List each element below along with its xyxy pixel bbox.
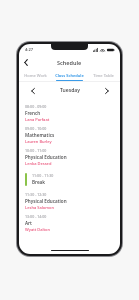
staticText: Mathematics bbox=[25, 132, 55, 138]
staticText: Schedule bbox=[57, 59, 82, 66]
staticText: Break bbox=[32, 179, 46, 185]
staticText: 10:00 - 11:00 bbox=[25, 148, 47, 153]
staticText: Lesha Salomon bbox=[25, 205, 54, 210]
button[interactable]: Next day bbox=[101, 85, 112, 96]
button[interactable]: Previous day bbox=[27, 85, 38, 96]
staticText: 11:30 - 12:30 bbox=[25, 192, 47, 197]
staticText: Home Work bbox=[24, 73, 47, 78]
staticText: 09:00 - 10:00 bbox=[25, 126, 47, 131]
staticText: 13:00 - 14:00 bbox=[25, 214, 47, 219]
button[interactable]: 09:00 - 10:00 bbox=[19, 124, 120, 146]
staticText: Physical Education bbox=[25, 154, 67, 160]
staticText: Time Table bbox=[93, 73, 114, 78]
staticText: 4:27 bbox=[25, 47, 33, 52]
button[interactable]: 08:00 - 09:00 bbox=[19, 102, 120, 124]
staticText: 08:00 - 09:00 bbox=[25, 104, 47, 109]
button[interactable]: 11:00 - 11:30 bbox=[19, 168, 120, 190]
staticText: 11:00 - 11:30 bbox=[32, 173, 54, 178]
staticText: Art bbox=[25, 220, 32, 226]
button[interactable]: 13:00 - 14:00 bbox=[19, 212, 120, 234]
button[interactable]: Home Work bbox=[19, 70, 52, 81]
staticText: Lenka Dessed bbox=[25, 161, 52, 166]
staticText: Wyatt Dalton bbox=[25, 227, 51, 232]
staticText: Lana Parfaat bbox=[25, 117, 50, 122]
staticText: French bbox=[25, 110, 41, 116]
button[interactable]: Back bbox=[19, 56, 32, 69]
button[interactable]: Class Schedule bbox=[52, 70, 86, 81]
staticText: Lauren Burley bbox=[25, 139, 52, 144]
button[interactable]: Time Table bbox=[86, 70, 120, 81]
staticText: Tuesday bbox=[60, 87, 80, 94]
staticText: Physical Education bbox=[25, 198, 67, 204]
button[interactable]: 10:00 - 11:00 bbox=[19, 146, 120, 168]
button[interactable]: 11:30 - 12:30 bbox=[19, 190, 120, 212]
staticText: Class Schedule bbox=[55, 73, 84, 78]
